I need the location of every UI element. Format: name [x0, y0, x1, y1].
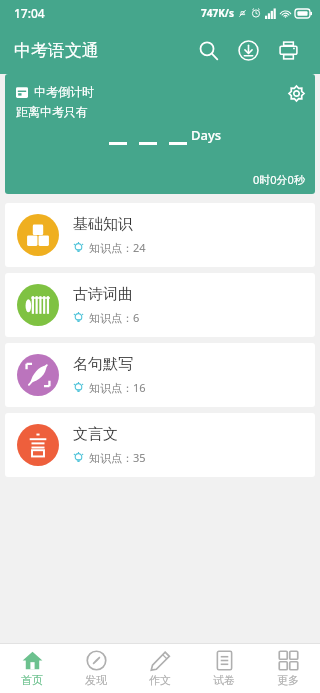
button[interactable]: 首页	[0, 643, 64, 693]
staticText: 古诗词曲	[73, 285, 133, 304]
staticText: 作文	[149, 673, 171, 687]
staticText: 知识点：24	[89, 240, 146, 255]
staticText: 747K/s	[201, 6, 234, 20]
staticText: Days	[191, 126, 222, 144]
staticText: 中考语文通	[14, 40, 99, 61]
staticText: 0时0分0秒	[253, 172, 305, 187]
staticText: 知识点：35	[89, 450, 146, 465]
staticText: 更多	[277, 673, 299, 687]
staticText: 知识点：6	[89, 310, 140, 325]
button[interactable]: 古诗词曲	[5, 273, 315, 337]
button[interactable]: 作文	[128, 643, 192, 693]
button[interactable]: 更多	[256, 643, 320, 693]
button[interactable]: Countdown settings	[283, 80, 309, 106]
button[interactable]: Download	[228, 30, 268, 70]
button[interactable]: 发现	[64, 643, 128, 693]
button[interactable]: 基础知识	[5, 203, 315, 267]
staticText: 试卷	[213, 673, 235, 687]
staticText: 首页	[21, 673, 43, 687]
button[interactable]: 试卷	[192, 643, 256, 693]
staticText: 知识点：16	[89, 380, 146, 395]
staticText: 名句默写	[73, 355, 133, 374]
staticText: 发现	[85, 673, 107, 687]
button[interactable]: Print	[268, 30, 308, 70]
staticText: 距离中考只有	[16, 104, 88, 119]
button[interactable]: 名句默写	[5, 343, 315, 407]
button[interactable]: Search	[188, 30, 228, 70]
staticText: 17:04	[14, 5, 45, 21]
button[interactable]: 文言文	[5, 413, 315, 477]
staticText: 中考倒计时	[34, 84, 94, 99]
staticText: 文言文	[73, 425, 118, 444]
staticText: 基础知识	[73, 215, 133, 234]
button[interactable]: 中考倒计时	[5, 74, 315, 194]
